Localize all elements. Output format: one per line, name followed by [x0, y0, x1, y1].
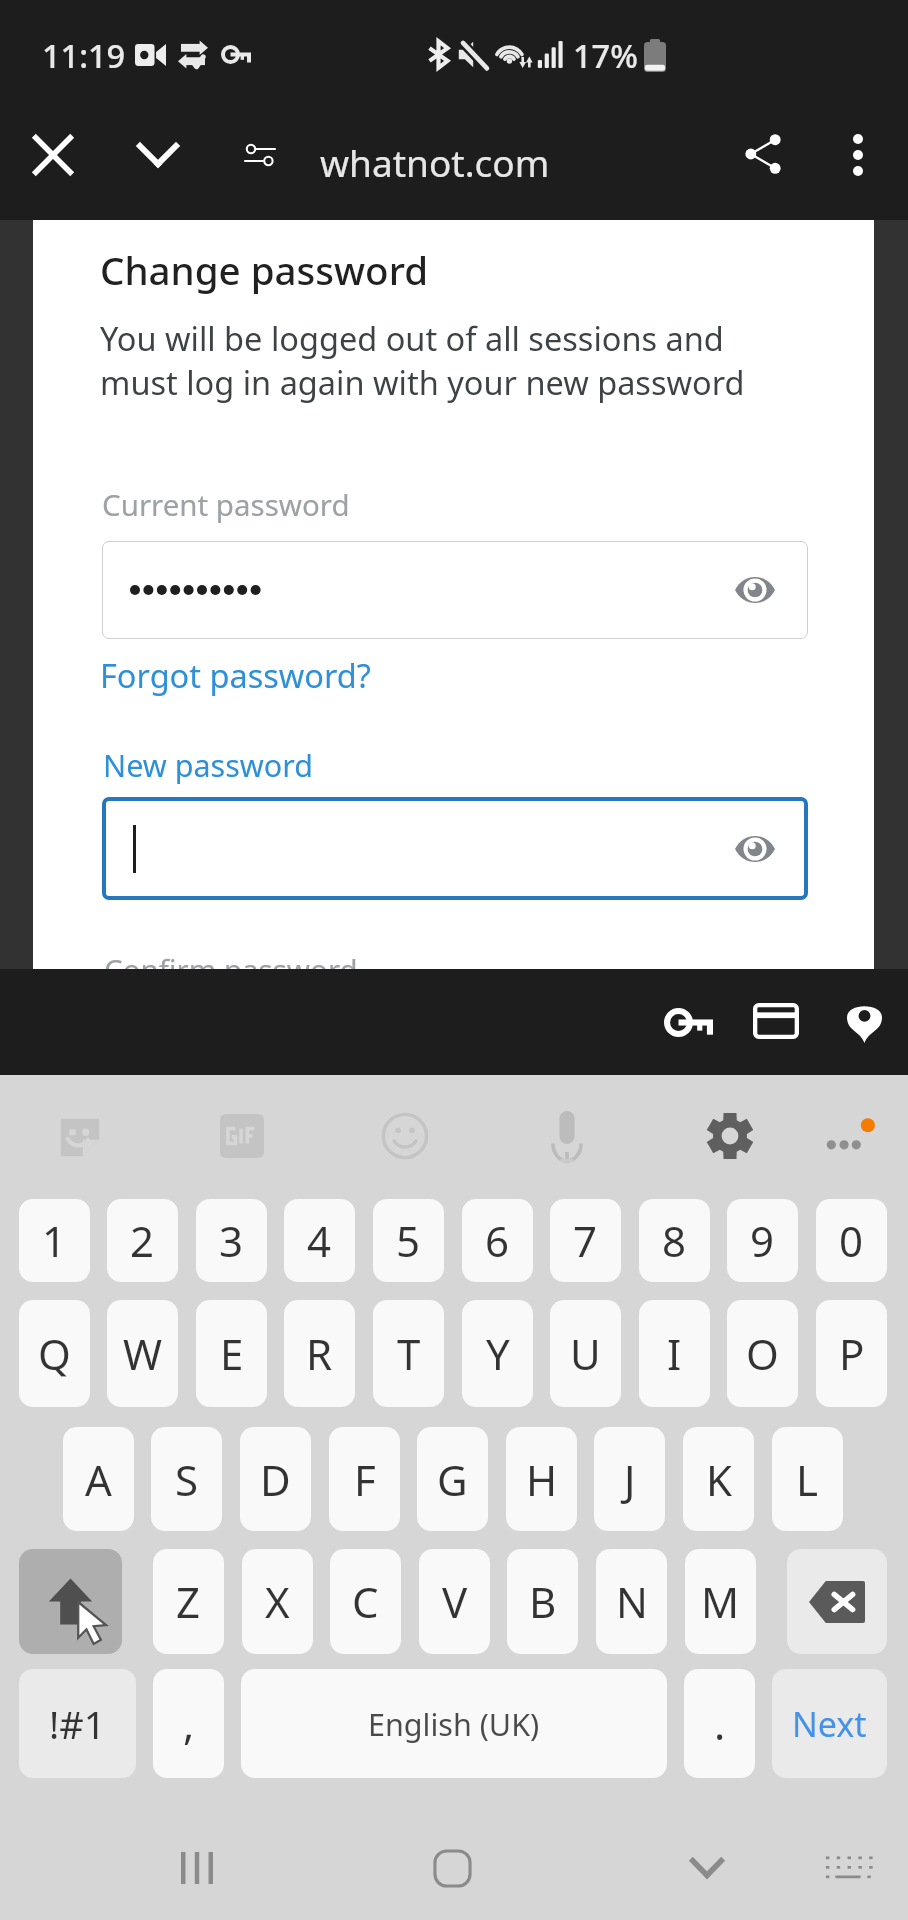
button[interactable]: 1 — [19, 1199, 90, 1282]
button[interactable]: J — [594, 1427, 665, 1531]
button[interactable]: V — [419, 1549, 490, 1654]
staticText: Z — [176, 1573, 201, 1630]
button[interactable]: R — [284, 1300, 355, 1407]
button[interactable]: E — [196, 1300, 267, 1407]
button[interactable]: Show password — [728, 822, 782, 876]
button[interactable]: 6 — [462, 1199, 533, 1282]
button[interactable]: 9 — [727, 1199, 798, 1282]
staticText: E — [220, 1325, 244, 1382]
button[interactable]: D — [240, 1427, 311, 1531]
button[interactable]: Z — [153, 1549, 224, 1654]
button[interactable]: Show password — [102, 797, 808, 900]
button[interactable]: A — [63, 1427, 134, 1531]
staticText: 11:19 — [42, 33, 126, 77]
button[interactable]: 5 — [373, 1199, 444, 1282]
button[interactable]: C — [330, 1549, 401, 1654]
staticText: M — [701, 1573, 740, 1630]
staticText: 9 — [750, 1212, 775, 1269]
staticText: 3 — [219, 1212, 244, 1269]
staticText: 0 — [839, 1212, 864, 1269]
button[interactable]: 0 — [816, 1199, 887, 1282]
button[interactable]: T — [373, 1300, 444, 1407]
button[interactable]: More options — [807, 1096, 887, 1176]
button[interactable]: 3 — [196, 1199, 267, 1282]
staticText: J — [624, 1451, 636, 1508]
staticText: 7 — [573, 1212, 598, 1269]
button[interactable]: , — [153, 1669, 224, 1778]
staticText: R — [306, 1325, 333, 1382]
button[interactable]: 8 — [639, 1199, 710, 1282]
staticText: T — [397, 1325, 421, 1382]
button[interactable]: Minimise — [121, 118, 195, 192]
button[interactable]: Home — [412, 1828, 492, 1908]
staticText: B — [529, 1573, 557, 1630]
button[interactable]: P — [816, 1300, 887, 1407]
staticText: H — [526, 1451, 558, 1508]
button[interactable]: 4 — [284, 1199, 355, 1282]
staticText: New password — [103, 744, 313, 786]
button[interactable]: Forgot password? — [100, 653, 371, 697]
staticText: Next — [792, 1701, 867, 1747]
button[interactable]: Stickers — [40, 1096, 120, 1176]
staticText: O — [746, 1325, 779, 1382]
staticText: Q — [38, 1325, 71, 1382]
button[interactable]: Back — [667, 1828, 747, 1908]
button[interactable]: Keyboard settings — [690, 1096, 770, 1176]
button[interactable]: I — [639, 1300, 710, 1407]
button[interactable]: More options — [821, 118, 895, 192]
button[interactable]: O — [727, 1300, 798, 1407]
button[interactable]: Payment methods — [740, 985, 812, 1057]
staticText: 1 — [42, 1212, 67, 1269]
staticText: L — [796, 1451, 819, 1508]
button[interactable]: K — [683, 1427, 754, 1531]
button[interactable]: Backspace — [787, 1549, 887, 1654]
button[interactable]: Show password — [102, 541, 808, 639]
staticText: F — [354, 1451, 376, 1508]
button[interactable]: X — [242, 1549, 313, 1654]
staticText: K — [706, 1451, 732, 1508]
button[interactable]: Addresses — [828, 985, 900, 1057]
staticText: V — [442, 1573, 468, 1630]
button[interactable]: F — [329, 1427, 400, 1531]
button[interactable]: G — [417, 1427, 488, 1531]
button[interactable]: Close — [16, 118, 90, 192]
button[interactable]: Site information — [227, 118, 301, 192]
button[interactable]: L — [772, 1427, 843, 1531]
button[interactable]: Next — [772, 1669, 887, 1778]
staticText: A — [85, 1451, 112, 1508]
button[interactable]: N — [596, 1549, 667, 1654]
button[interactable]: 7 — [550, 1199, 621, 1282]
staticText: 4 — [307, 1212, 332, 1269]
button[interactable]: GIF — [202, 1096, 282, 1176]
button[interactable]: Y — [462, 1300, 533, 1407]
staticText: C — [352, 1573, 379, 1630]
staticText: S — [175, 1451, 199, 1508]
button[interactable]: Share — [726, 118, 800, 192]
button[interactable]: Recent apps — [157, 1828, 237, 1908]
button[interactable]: . — [684, 1669, 755, 1778]
button[interactable]: M — [685, 1549, 756, 1654]
button[interactable]: English (UK) — [241, 1669, 667, 1778]
button[interactable]: Emoji — [365, 1096, 445, 1176]
button[interactable]: B — [507, 1549, 578, 1654]
staticText: Current password — [102, 484, 350, 524]
staticText: P — [839, 1325, 865, 1382]
button[interactable]: Q — [19, 1300, 90, 1407]
staticText: U — [570, 1325, 601, 1382]
staticText: whatnot.com — [320, 137, 550, 187]
button[interactable]: S — [151, 1427, 222, 1531]
button[interactable]: Hide keyboard — [808, 1828, 888, 1908]
button[interactable]: Passwords — [652, 986, 724, 1058]
button[interactable]: Voice input — [527, 1096, 607, 1176]
staticText: G — [437, 1451, 468, 1508]
button[interactable]: Show password — [728, 563, 782, 617]
button[interactable]: H — [506, 1427, 577, 1531]
button[interactable]: W — [107, 1300, 178, 1407]
staticText: 5 — [396, 1212, 421, 1269]
button[interactable]: U — [550, 1300, 621, 1407]
staticText: 2 — [130, 1212, 155, 1269]
button[interactable]: !#1 — [19, 1669, 136, 1778]
button[interactable]: Shift — [19, 1549, 122, 1654]
staticText: English (UK) — [368, 1703, 540, 1745]
button[interactable]: 2 — [107, 1199, 178, 1282]
